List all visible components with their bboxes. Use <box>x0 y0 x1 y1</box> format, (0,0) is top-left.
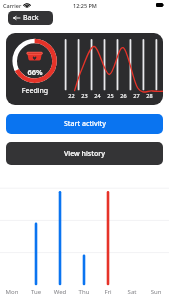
staticText: 66% <box>25 67 45 77</box>
staticText: 24 <box>91 92 104 99</box>
staticText: Thu <box>72 288 96 296</box>
staticText: 25 <box>104 92 117 99</box>
staticText: 22 <box>65 92 78 99</box>
staticText: Tue <box>24 288 48 296</box>
staticText: Sun <box>144 288 168 296</box>
button[interactable]: Back <box>8 11 53 25</box>
staticText: 23 <box>78 92 91 99</box>
staticText: View history <box>64 149 105 159</box>
staticText: Wed <box>48 288 72 296</box>
staticText: 12:25 PM <box>73 2 97 9</box>
staticText: Back <box>23 13 39 23</box>
staticText: Feeding <box>18 86 52 96</box>
button[interactable]: Start activity <box>6 114 163 134</box>
staticText: 27 <box>130 92 143 99</box>
staticText: Start activity <box>64 119 106 129</box>
staticText: 28 <box>143 92 156 99</box>
staticText: 26 <box>117 92 130 99</box>
staticText: Carrier <box>3 2 22 9</box>
button[interactable]: View history <box>6 142 163 165</box>
staticText: Mon <box>0 288 24 296</box>
staticText: Sat <box>120 288 144 296</box>
staticText: Fri <box>96 288 120 296</box>
